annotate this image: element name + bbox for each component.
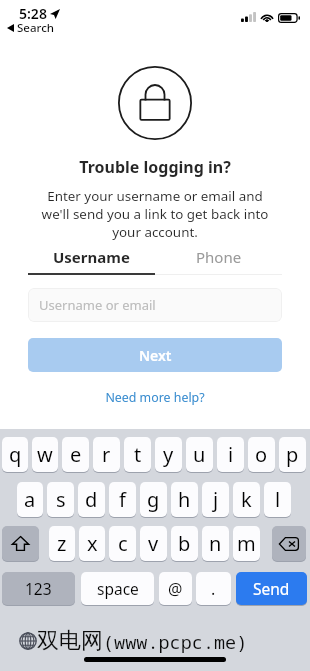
staticText: Phone bbox=[196, 247, 242, 267]
staticText: 双电网 bbox=[37, 627, 103, 655]
button[interactable]: b bbox=[171, 526, 198, 561]
staticText: r bbox=[102, 441, 111, 468]
button[interactable]: Backspace bbox=[272, 526, 306, 561]
staticText: j bbox=[213, 486, 219, 513]
staticText: z bbox=[57, 530, 67, 557]
button[interactable]: p bbox=[279, 437, 306, 472]
button[interactable]: c bbox=[109, 526, 136, 561]
staticText: w bbox=[37, 441, 53, 468]
staticText: Search bbox=[17, 20, 54, 36]
button[interactable]: h bbox=[171, 482, 198, 517]
button[interactable]: j bbox=[202, 482, 229, 517]
staticText: Next bbox=[139, 346, 172, 365]
staticText: Username or email bbox=[39, 296, 156, 314]
button[interactable]: 123 bbox=[2, 572, 75, 605]
button[interactable]: f bbox=[109, 482, 136, 517]
button[interactable]: d bbox=[78, 482, 105, 517]
staticText: o bbox=[255, 441, 268, 468]
staticText: l bbox=[275, 486, 281, 513]
staticText: h bbox=[178, 486, 191, 513]
button[interactable]: Phone bbox=[155, 244, 282, 269]
button[interactable]: r bbox=[93, 437, 120, 472]
staticText: k bbox=[241, 486, 252, 513]
staticText: @ bbox=[168, 578, 183, 600]
button[interactable]: o bbox=[248, 437, 275, 472]
staticText: a bbox=[24, 486, 36, 513]
staticText: f bbox=[119, 486, 126, 513]
button[interactable]: q bbox=[2, 437, 28, 472]
button[interactable]: @ bbox=[159, 572, 192, 605]
staticText: x bbox=[87, 530, 98, 557]
staticText: v bbox=[148, 530, 159, 557]
button[interactable]: m bbox=[233, 526, 260, 561]
staticText: space bbox=[97, 578, 139, 599]
staticText: Send bbox=[253, 578, 290, 599]
button[interactable]: z bbox=[49, 526, 75, 561]
staticText: t bbox=[134, 441, 142, 468]
staticText: 5:28 bbox=[19, 4, 47, 23]
staticText: Trouble logging in? bbox=[0, 156, 310, 178]
button[interactable]: k bbox=[233, 482, 260, 517]
button[interactable]: a bbox=[17, 482, 43, 517]
staticText: p bbox=[286, 441, 299, 468]
button[interactable]: l bbox=[264, 482, 291, 517]
button[interactable]: . bbox=[196, 572, 231, 605]
button[interactable]: Need more help? bbox=[101, 387, 209, 408]
button[interactable]: e bbox=[62, 437, 89, 472]
button[interactable]: Shift bbox=[2, 526, 39, 561]
staticText: 123 bbox=[25, 578, 52, 599]
staticText: b bbox=[178, 530, 191, 557]
staticText: u bbox=[193, 441, 206, 468]
button[interactable]: Username bbox=[28, 244, 155, 269]
staticText: . bbox=[211, 578, 216, 600]
staticText: g bbox=[147, 486, 160, 513]
button[interactable]: x bbox=[79, 526, 105, 561]
staticText: (www.pcpc.me) bbox=[103, 629, 248, 654]
button[interactable]: Username or email bbox=[28, 288, 282, 322]
staticText: Need more help? bbox=[105, 389, 205, 406]
button[interactable]: s bbox=[47, 482, 74, 517]
button[interactable]: w bbox=[32, 437, 58, 472]
button[interactable]: g bbox=[140, 482, 167, 517]
staticText: y bbox=[163, 441, 174, 468]
button[interactable]: Next bbox=[28, 338, 282, 372]
staticText: q bbox=[9, 441, 22, 468]
button[interactable]: Send bbox=[236, 572, 307, 605]
staticText: e bbox=[70, 441, 82, 468]
staticText: s bbox=[56, 486, 66, 513]
button[interactable]: u bbox=[186, 437, 213, 472]
button[interactable]: n bbox=[202, 526, 229, 561]
button[interactable]: t bbox=[124, 437, 151, 472]
staticText: Username bbox=[53, 247, 130, 267]
button[interactable]: i bbox=[217, 437, 244, 472]
staticText: c bbox=[118, 530, 128, 557]
staticText: m bbox=[237, 530, 256, 557]
staticText: Enter your username or email and we'll s… bbox=[0, 187, 310, 241]
staticText: n bbox=[209, 530, 222, 557]
button[interactable]: v bbox=[140, 526, 167, 561]
button[interactable]: space bbox=[81, 572, 154, 605]
staticText: i bbox=[228, 441, 234, 468]
button[interactable]: y bbox=[155, 437, 182, 472]
staticText: d bbox=[85, 486, 98, 513]
